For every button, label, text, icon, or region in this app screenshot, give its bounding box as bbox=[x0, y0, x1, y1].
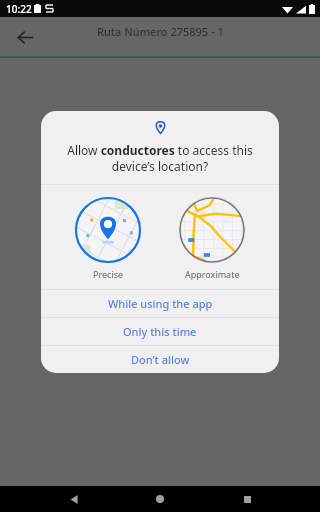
staticText: Approximate bbox=[185, 268, 240, 280]
button[interactable]: Back bbox=[61, 486, 87, 512]
staticText: Precise bbox=[93, 268, 124, 280]
button[interactable]: Home bbox=[147, 486, 173, 512]
button[interactable]: Precise bbox=[70, 196, 146, 280]
staticText: Ruta Número 275895 - 1 bbox=[97, 24, 224, 39]
button[interactable]: Approximate bbox=[174, 196, 250, 280]
button[interactable]: While using the app bbox=[41, 290, 279, 317]
button[interactable]: Only this time bbox=[41, 318, 279, 345]
button[interactable]: Back bbox=[8, 20, 42, 54]
staticText: 10:22 bbox=[6, 2, 32, 16]
button[interactable]: Recents bbox=[234, 486, 260, 512]
staticText: Allow conductores to access this device’… bbox=[55, 142, 265, 174]
staticText: Don’t allow bbox=[131, 352, 190, 367]
staticText: While using the app bbox=[108, 296, 213, 311]
staticText: Only this time bbox=[123, 324, 197, 339]
button[interactable]: Don’t allow bbox=[41, 346, 279, 373]
